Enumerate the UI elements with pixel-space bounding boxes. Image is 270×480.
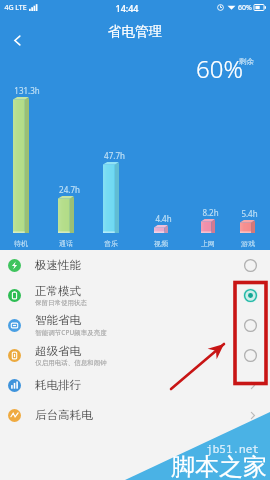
staticText: 视频: [154, 239, 168, 248]
staticText: 8.2h: [202, 207, 219, 218]
button[interactable]: 智能省电: [0, 310, 270, 340]
staticText: 60%: [196, 52, 243, 85]
staticText: 131.3h: [14, 85, 40, 96]
staticText: 智能调节CPU频率及亮度: [35, 328, 107, 337]
staticText: 智能省电: [35, 313, 81, 327]
staticText: 极速性能: [35, 258, 81, 272]
staticText: 超级省电: [35, 344, 81, 358]
button[interactable]: 后台高耗电: [0, 400, 270, 430]
staticText: 待机: [14, 239, 28, 248]
staticText: 仅启用电话、信息和闹钟: [35, 359, 107, 367]
staticText: jb51.net: [206, 441, 259, 456]
staticText: 24.7h: [59, 184, 80, 195]
staticText: 游戏: [241, 239, 255, 248]
button[interactable]: 超级省电: [0, 340, 270, 370]
staticText: 正常模式: [35, 284, 81, 298]
button[interactable]: 耗电排行: [0, 370, 270, 400]
staticText: 14:44: [115, 2, 139, 14]
staticText: 4G LTE: [4, 3, 27, 13]
button[interactable]: 正常模式: [0, 280, 270, 310]
staticText: 后台高耗电: [35, 408, 93, 422]
button[interactable]: 极速性能: [0, 250, 270, 280]
staticText: 脚本之家: [171, 452, 267, 480]
staticText: 音乐: [104, 239, 118, 248]
staticText: 省电管理: [108, 23, 162, 40]
staticText: 4.4h: [155, 213, 172, 224]
staticText: 60%: [238, 3, 252, 13]
staticText: 耗电排行: [35, 378, 81, 392]
staticText: 47.7h: [104, 150, 125, 161]
staticText: 剩余: [239, 57, 254, 66]
staticText: 上网: [201, 239, 215, 248]
staticText: 通话: [59, 239, 73, 248]
button[interactable]: Back: [0, 23, 34, 57]
staticText: 保留日常使用状态: [35, 299, 87, 307]
staticText: 5.4h: [241, 208, 258, 219]
